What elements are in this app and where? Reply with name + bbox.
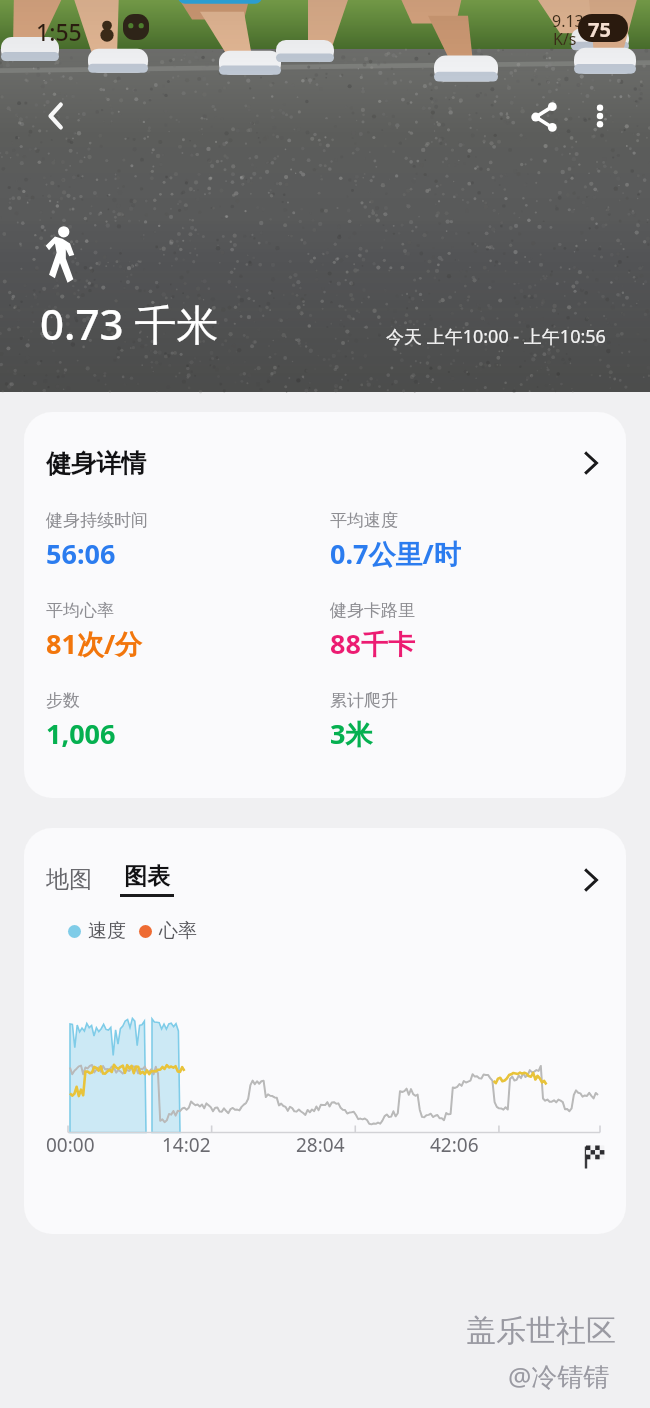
staticText: 今天 上午10:00 - 上午10:56 [386,324,606,349]
staticText: 健身详情 [46,448,146,479]
staticText: 1:55 [36,16,82,47]
staticText: 3米 [330,715,373,752]
staticText: 速度 [88,919,126,943]
staticText: 累计爬升 [330,690,398,711]
staticText: 平均心率 [46,600,114,621]
staticText: 88千卡 [330,625,415,662]
staticText: 56:06 [46,535,116,572]
staticText: 平均速度 [330,510,398,531]
staticText: 0.73 千米 [40,295,219,352]
staticText: @冷锖锖 [508,1358,610,1394]
staticText: K/s [553,28,577,50]
staticText: 健身卡路里 [330,600,415,621]
button[interactable]: Back [30,90,82,142]
button[interactable]: Open chart [574,863,608,897]
staticText: 图表 [124,862,170,891]
staticText: 9.13 [552,10,584,32]
button[interactable]: 地图 [46,865,96,894]
staticText: 00:00 [46,1132,95,1158]
button[interactable]: 图表 [120,862,174,897]
staticText: 81次/分 [46,625,143,662]
staticText: 42:06 [430,1132,479,1158]
staticText: 14:02 [162,1132,211,1158]
staticText: 75 [588,16,611,43]
staticText: 盖乐世社区 [466,1312,616,1350]
staticText: 28:04 [296,1132,345,1158]
staticText: 健身持续时间 [46,510,148,531]
staticText: 0.7公里/时 [330,535,461,572]
button[interactable]: 健身详情 [24,412,626,498]
button[interactable]: Share [518,90,570,142]
staticText: 地图 [46,865,92,894]
staticText: 1,006 [46,715,116,752]
staticText: 步数 [46,690,80,711]
staticText: 心率 [159,919,197,943]
button[interactable]: More options [574,90,626,142]
